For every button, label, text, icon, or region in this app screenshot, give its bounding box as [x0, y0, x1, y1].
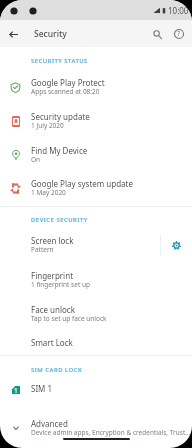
- staticText: Screen lock: [31, 235, 74, 246]
- staticText: SIM CARD LOCK: [31, 366, 83, 374]
- staticText: 1: [14, 386, 18, 395]
- staticText: Find My Device: [31, 145, 88, 156]
- staticText: 1 July 2020: [31, 121, 64, 130]
- button[interactable]: Search: [146, 23, 168, 45]
- staticText: ?: [177, 29, 181, 39]
- staticText: SECURITY STATUS: [31, 57, 88, 65]
- button[interactable]: Fingerprint: [0, 263, 192, 297]
- staticText: Smart Lock: [31, 337, 73, 348]
- button[interactable]: Google Play Protect: [0, 70, 192, 104]
- staticText: Advanced: [31, 418, 68, 429]
- staticText: Tap to set up face unlock: [31, 314, 107, 323]
- staticText: Face unlock: [31, 304, 75, 315]
- staticText: SIM 1: [31, 383, 53, 394]
- button[interactable]: Screen lock settings: [161, 228, 192, 262]
- staticText: 1 May 2020: [31, 188, 66, 197]
- staticText: Pattern: [31, 245, 54, 254]
- staticText: Device admin apps, Encryption & credenti…: [31, 428, 191, 437]
- button[interactable]: Smart Lock: [0, 332, 192, 353]
- button[interactable]: Help: [168, 23, 190, 45]
- staticText: Security update: [31, 111, 90, 122]
- button[interactable]: Security update: [0, 104, 192, 138]
- button[interactable]: Navigate up: [1, 22, 25, 46]
- button[interactable]: Screen lock: [0, 228, 192, 262]
- staticText: Apps scanned at 08:20: [31, 87, 100, 96]
- staticText: Google Play system update: [31, 178, 134, 189]
- staticText: On: [31, 155, 41, 164]
- button[interactable]: Google Play system update: [0, 171, 192, 205]
- button[interactable]: Face unlock: [0, 297, 192, 331]
- staticText: 1 fingerprint set up: [31, 280, 90, 289]
- button[interactable]: Find My Device: [0, 138, 192, 172]
- staticText: Security: [34, 28, 67, 40]
- button[interactable]: 1: [0, 378, 192, 399]
- button[interactable]: Advanced: [0, 411, 192, 445]
- staticText: DEVICE SECURITY: [31, 216, 88, 224]
- staticText: Google Play Protect: [31, 77, 105, 88]
- staticText: 10:00: [168, 5, 189, 16]
- staticText: Fingerprint: [31, 270, 74, 281]
